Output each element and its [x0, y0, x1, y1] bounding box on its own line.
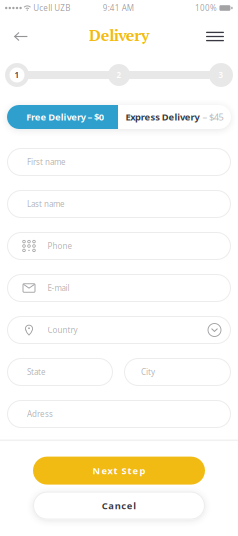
staticText: Delivery [89, 24, 149, 46]
button[interactable]: State [7, 358, 113, 386]
button[interactable]: Adress [7, 400, 231, 428]
button[interactable]: Country [7, 316, 231, 344]
staticText: Free Delivery – $0 [26, 111, 104, 123]
staticText: Last name [27, 199, 65, 209]
staticText: 1 [14, 70, 19, 80]
button[interactable]: Phone [7, 232, 231, 260]
staticText: Country [47, 325, 77, 335]
staticText: 3 [218, 70, 223, 80]
staticText: E-mail [47, 283, 69, 293]
button[interactable]: Back [0, 22, 28, 51]
button[interactable]: E-mail [7, 274, 231, 302]
staticText: Phone [47, 241, 72, 251]
staticText: Express Delivery [125, 111, 199, 123]
staticText: 9:41 AM [103, 3, 134, 13]
staticText: City [141, 367, 155, 377]
button[interactable]: Cancel [33, 492, 205, 520]
button[interactable]: Express Delivery [118, 105, 231, 129]
button[interactable]: Menu [206, 22, 238, 51]
staticText: Ucell UZB [33, 3, 70, 13]
button[interactable]: Next Step [33, 457, 205, 485]
button[interactable]: Free Delivery – $0 [7, 105, 118, 129]
staticText: 2 [116, 70, 121, 80]
staticText: 100% [195, 3, 217, 13]
staticText: Adress [27, 409, 53, 419]
button[interactable]: First name [7, 148, 231, 176]
button[interactable]: Last name [7, 190, 231, 218]
button[interactable]: City [124, 358, 231, 386]
staticText: Next Step [92, 464, 145, 477]
staticText: – $45 [202, 111, 224, 123]
staticText: First name [27, 157, 66, 167]
staticText: Cancel [102, 499, 136, 512]
staticText: State [27, 367, 46, 377]
